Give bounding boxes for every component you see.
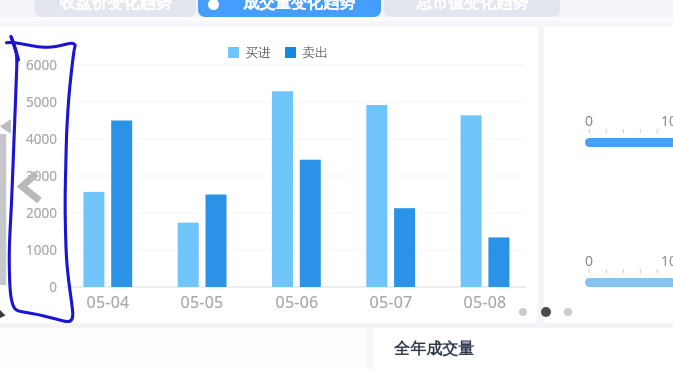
staticText: 100 <box>661 251 673 270</box>
staticText: 5000 <box>13 93 57 111</box>
staticText: 卖出 <box>302 44 328 60</box>
staticText: 05-08 <box>449 291 521 313</box>
button[interactable]: 成交量变化趋势 <box>198 0 381 17</box>
staticText: 成交量变化趋势 <box>243 0 355 13</box>
staticText: 全年成交量 <box>394 339 474 359</box>
staticText: 05-06 <box>261 291 333 313</box>
button[interactable]: 收盘价变化趋势 <box>35 0 196 17</box>
staticText: 05-04 <box>72 291 144 313</box>
staticText: 总市值变化趋势 <box>384 0 560 13</box>
staticText: 买进 <box>245 44 271 60</box>
staticText: 0 <box>585 111 594 130</box>
staticText: 2000 <box>13 204 57 222</box>
button[interactable]: 总市值变化趋势 <box>384 0 560 17</box>
staticText: 0 <box>585 251 594 270</box>
button[interactable]: Previous page <box>17 167 47 211</box>
staticText: 0 <box>13 278 57 296</box>
staticText: 100 <box>661 111 673 130</box>
staticText: 4000 <box>13 130 57 148</box>
staticText: 05-05 <box>166 291 238 313</box>
staticText: 6000 <box>13 56 57 74</box>
staticText: 1000 <box>13 241 57 259</box>
staticText: 05-07 <box>355 291 427 313</box>
staticText: 收盘价变化趋势 <box>35 0 196 13</box>
staticText: 3000 <box>13 167 57 185</box>
